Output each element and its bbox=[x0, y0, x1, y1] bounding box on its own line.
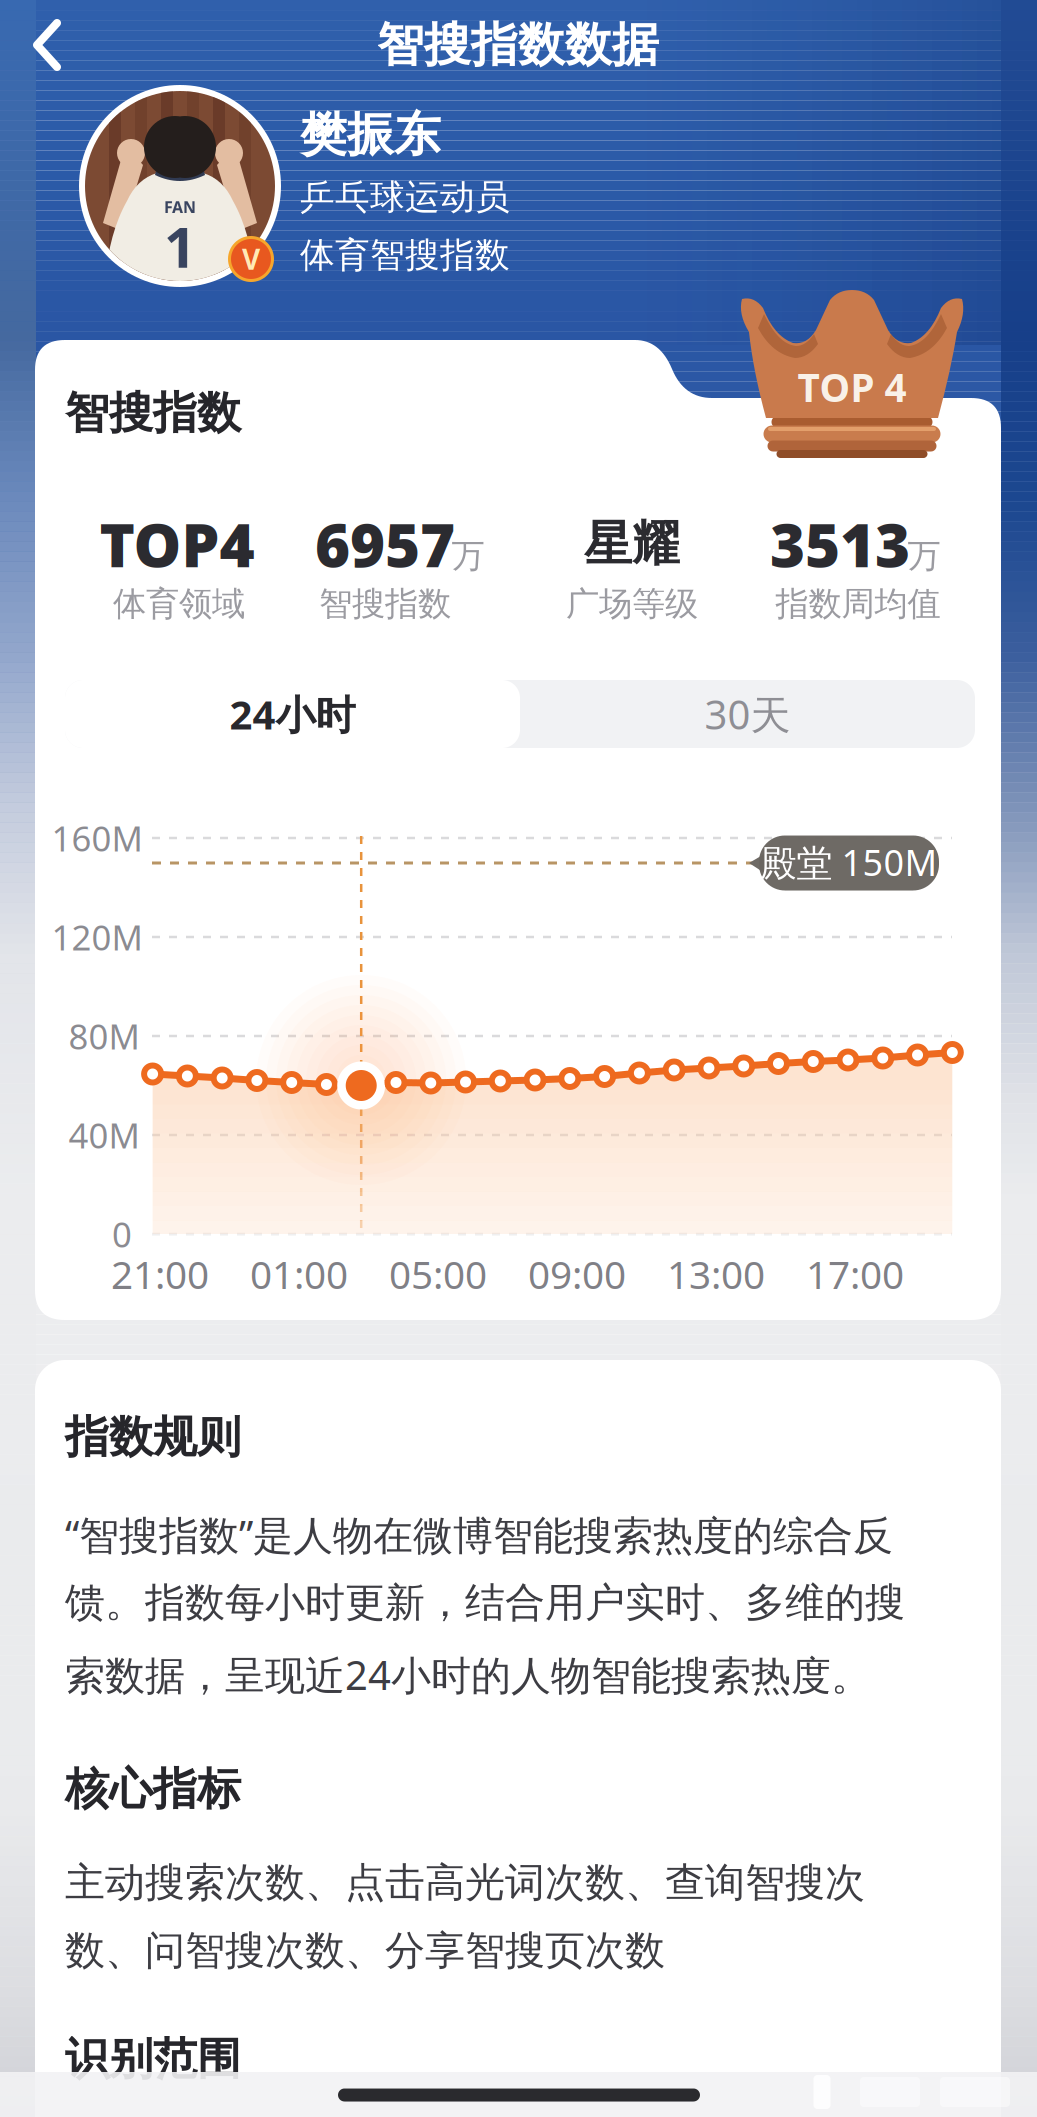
button[interactable]: Back bbox=[0, 0, 90, 90]
staticText: TOP 4 bbox=[797, 361, 906, 413]
staticText: 核心指标 bbox=[65, 1762, 241, 1816]
staticText: 05:00 bbox=[389, 1248, 487, 1300]
staticText: 智搜指数 bbox=[319, 583, 451, 624]
staticText: 识别范围 bbox=[65, 2032, 241, 2086]
staticText: 星耀 bbox=[584, 514, 680, 573]
staticText: 0 bbox=[112, 1211, 132, 1257]
staticText: 17:00 bbox=[806, 1248, 904, 1300]
staticText: TOP4 bbox=[99, 504, 254, 584]
staticText: 指数周均值 bbox=[775, 583, 940, 624]
staticText: 3513 bbox=[770, 504, 910, 584]
staticText: 体育领域 bbox=[113, 583, 245, 624]
button[interactable]: 24小时 bbox=[65, 680, 520, 748]
staticText: 万 bbox=[451, 535, 484, 576]
staticText: 智搜指数 bbox=[65, 386, 241, 440]
staticText: 09:00 bbox=[528, 1248, 626, 1300]
staticText: 01:00 bbox=[250, 1248, 348, 1300]
staticText: “智搜指数”是人物在微博智能搜索热度的综合反 bbox=[65, 1508, 893, 1561]
staticText: 指数规则 bbox=[65, 1410, 241, 1464]
staticText: 30天 bbox=[704, 687, 790, 740]
staticText: 樊振东 bbox=[300, 106, 441, 163]
staticText: 21:00 bbox=[111, 1248, 209, 1300]
staticText: 智搜指数数据 bbox=[377, 16, 659, 74]
staticText: 乒乓球运动员 bbox=[300, 176, 510, 219]
staticText: 万 bbox=[907, 535, 940, 576]
staticText: FAN bbox=[164, 196, 196, 218]
staticText: 80M bbox=[68, 1013, 139, 1059]
staticText: 120M bbox=[51, 914, 142, 960]
staticText: 160M bbox=[51, 815, 142, 861]
staticText: 24小时 bbox=[229, 687, 355, 740]
staticText: 6957 bbox=[315, 504, 455, 584]
staticText: 馈。指数每小时更新，结合用户实时、多维的搜 bbox=[65, 1578, 905, 1627]
staticText: 13:00 bbox=[667, 1248, 765, 1300]
button[interactable]: 30天 bbox=[520, 680, 975, 748]
staticText: 索数据，呈现近24小时的人物智能搜索热度。 bbox=[65, 1648, 871, 1701]
staticText: 体育智搜指数 bbox=[300, 234, 510, 277]
staticText: 40M bbox=[68, 1112, 139, 1158]
staticText: 数、问智搜次数、分享智搜页次数 bbox=[65, 1926, 665, 1975]
staticText: V bbox=[242, 240, 260, 278]
staticText: 主动搜索次数、点击高光词次数、查询智搜次 bbox=[65, 1858, 865, 1907]
staticText: 殿堂 150M bbox=[760, 838, 937, 886]
staticText: 广场等级 bbox=[566, 583, 698, 624]
staticText: 1 bbox=[164, 209, 196, 283]
